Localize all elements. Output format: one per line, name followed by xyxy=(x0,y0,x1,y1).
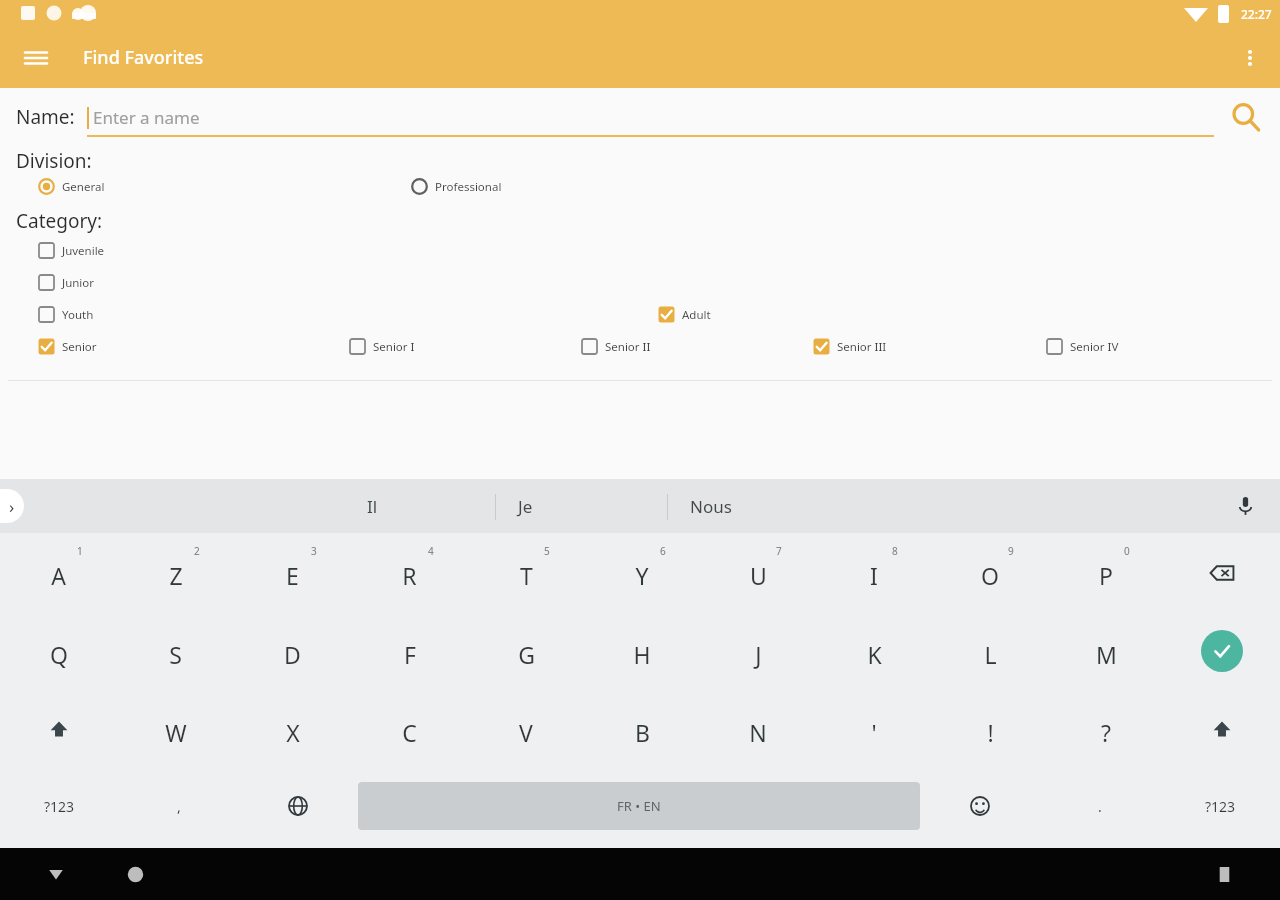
button[interactable]: Expand toolbar xyxy=(0,489,24,523)
button[interactable]: Professional xyxy=(409,174,504,199)
staticText: Professional xyxy=(435,179,502,195)
button[interactable]: Enter xyxy=(1164,612,1280,690)
button[interactable]: 6 xyxy=(584,533,700,612)
staticText: N xyxy=(749,717,767,748)
button[interactable]: M xyxy=(1048,612,1164,690)
button[interactable]: Senior I xyxy=(347,334,417,359)
button[interactable]: Emoji xyxy=(920,768,1040,844)
staticText: G xyxy=(518,639,535,670)
button[interactable]: 2 xyxy=(117,533,234,612)
staticText: T xyxy=(520,560,533,591)
staticText: 6 xyxy=(660,544,666,558)
staticText: A xyxy=(51,560,66,591)
button[interactable]: FR • EN xyxy=(358,782,920,830)
button[interactable]: B xyxy=(584,690,700,768)
button[interactable]: X xyxy=(234,690,351,768)
button[interactable]: K xyxy=(816,612,932,690)
staticText: H xyxy=(633,639,651,670)
staticText: ?123 xyxy=(44,797,75,816)
staticText: Q xyxy=(50,639,68,670)
button[interactable]: ?123 xyxy=(1160,768,1280,844)
button[interactable]: C xyxy=(351,690,468,768)
staticText: 1 xyxy=(77,544,83,558)
button[interactable]: Junior xyxy=(36,270,97,295)
staticText: Nous xyxy=(690,495,732,518)
staticText: Senior II xyxy=(605,339,651,355)
staticText: L xyxy=(984,639,997,670)
button[interactable]: Shift xyxy=(0,690,117,768)
staticText: J xyxy=(755,639,762,670)
button[interactable]: H xyxy=(584,612,700,690)
staticText: O xyxy=(981,560,999,591)
staticText: Adult xyxy=(682,307,711,323)
button[interactable]: 3 xyxy=(234,533,351,612)
button[interactable]: Youth xyxy=(36,302,96,327)
button[interactable]: 0 xyxy=(1048,533,1164,612)
button[interactable]: Je xyxy=(496,487,555,526)
button[interactable]: Change keyboard language xyxy=(238,768,358,844)
button[interactable]: ! xyxy=(932,690,1048,768)
button[interactable]: Il xyxy=(345,487,400,526)
staticText: Je xyxy=(518,495,533,518)
button[interactable]: ? xyxy=(1048,690,1164,768)
staticText: Senior IV xyxy=(1070,339,1119,355)
staticText: FR • EN xyxy=(617,797,661,815)
button[interactable]: G xyxy=(468,612,584,690)
button[interactable]: Senior xyxy=(36,334,99,359)
button[interactable]: F xyxy=(351,612,468,690)
button[interactable]: Adult xyxy=(656,302,713,327)
button[interactable]: 1 xyxy=(0,533,117,612)
staticText: 0 xyxy=(1124,544,1130,558)
staticText: Senior xyxy=(62,339,97,355)
button[interactable]: 8 xyxy=(816,533,932,612)
button[interactable]: J xyxy=(700,612,816,690)
button[interactable]: L xyxy=(932,612,1048,690)
staticText: Junior xyxy=(62,275,95,291)
button[interactable]: Senior IV xyxy=(1044,334,1121,359)
button[interactable]: D xyxy=(234,612,351,690)
staticText: V xyxy=(519,717,533,748)
button[interactable]: Senior II xyxy=(579,334,653,359)
button[interactable]: Open navigation drawer xyxy=(12,34,60,82)
button[interactable]: W xyxy=(117,690,234,768)
button[interactable]: General xyxy=(36,174,107,199)
staticText: X xyxy=(286,717,300,748)
button[interactable]: Enter a name xyxy=(87,97,1214,137)
staticText: R xyxy=(402,560,417,591)
button[interactable]: 7 xyxy=(700,533,816,612)
button[interactable]: V xyxy=(468,690,584,768)
staticText: U xyxy=(750,560,767,591)
button[interactable]: Recent apps xyxy=(1202,852,1246,896)
button[interactable]: ?123 xyxy=(0,768,119,844)
button[interactable]: Senior III xyxy=(811,334,889,359)
staticText: Find Favorites xyxy=(83,45,204,70)
staticText: E xyxy=(286,560,299,591)
button[interactable]: Juvenile xyxy=(36,238,107,263)
button[interactable]: S xyxy=(117,612,234,690)
staticText: 9 xyxy=(1008,544,1014,558)
button[interactable]: Q xyxy=(0,612,117,690)
staticText: . xyxy=(1098,797,1102,816)
button[interactable]: Backspace xyxy=(1164,533,1280,612)
staticText: Senior III xyxy=(837,339,887,355)
button[interactable]: Shift xyxy=(1164,690,1280,768)
button[interactable]: 9 xyxy=(932,533,1048,612)
staticText: Y xyxy=(635,560,649,591)
button[interactable]: Voice input xyxy=(1228,489,1262,523)
staticText: , xyxy=(177,797,181,816)
button[interactable]: N xyxy=(700,690,816,768)
staticText: ? xyxy=(1101,717,1111,748)
staticText: Z xyxy=(169,560,183,591)
button[interactable]: Search xyxy=(1224,95,1268,139)
button[interactable]: Home xyxy=(113,852,157,896)
staticText: 8 xyxy=(892,544,898,558)
button[interactable]: Nous xyxy=(668,487,754,526)
button[interactable]: ' xyxy=(816,690,932,768)
button[interactable]: Back xyxy=(34,852,78,896)
button[interactable]: 5 xyxy=(468,533,584,612)
staticText: Enter a name xyxy=(93,106,200,129)
button[interactable]: More options xyxy=(1226,34,1274,82)
button[interactable]: 4 xyxy=(351,533,468,612)
